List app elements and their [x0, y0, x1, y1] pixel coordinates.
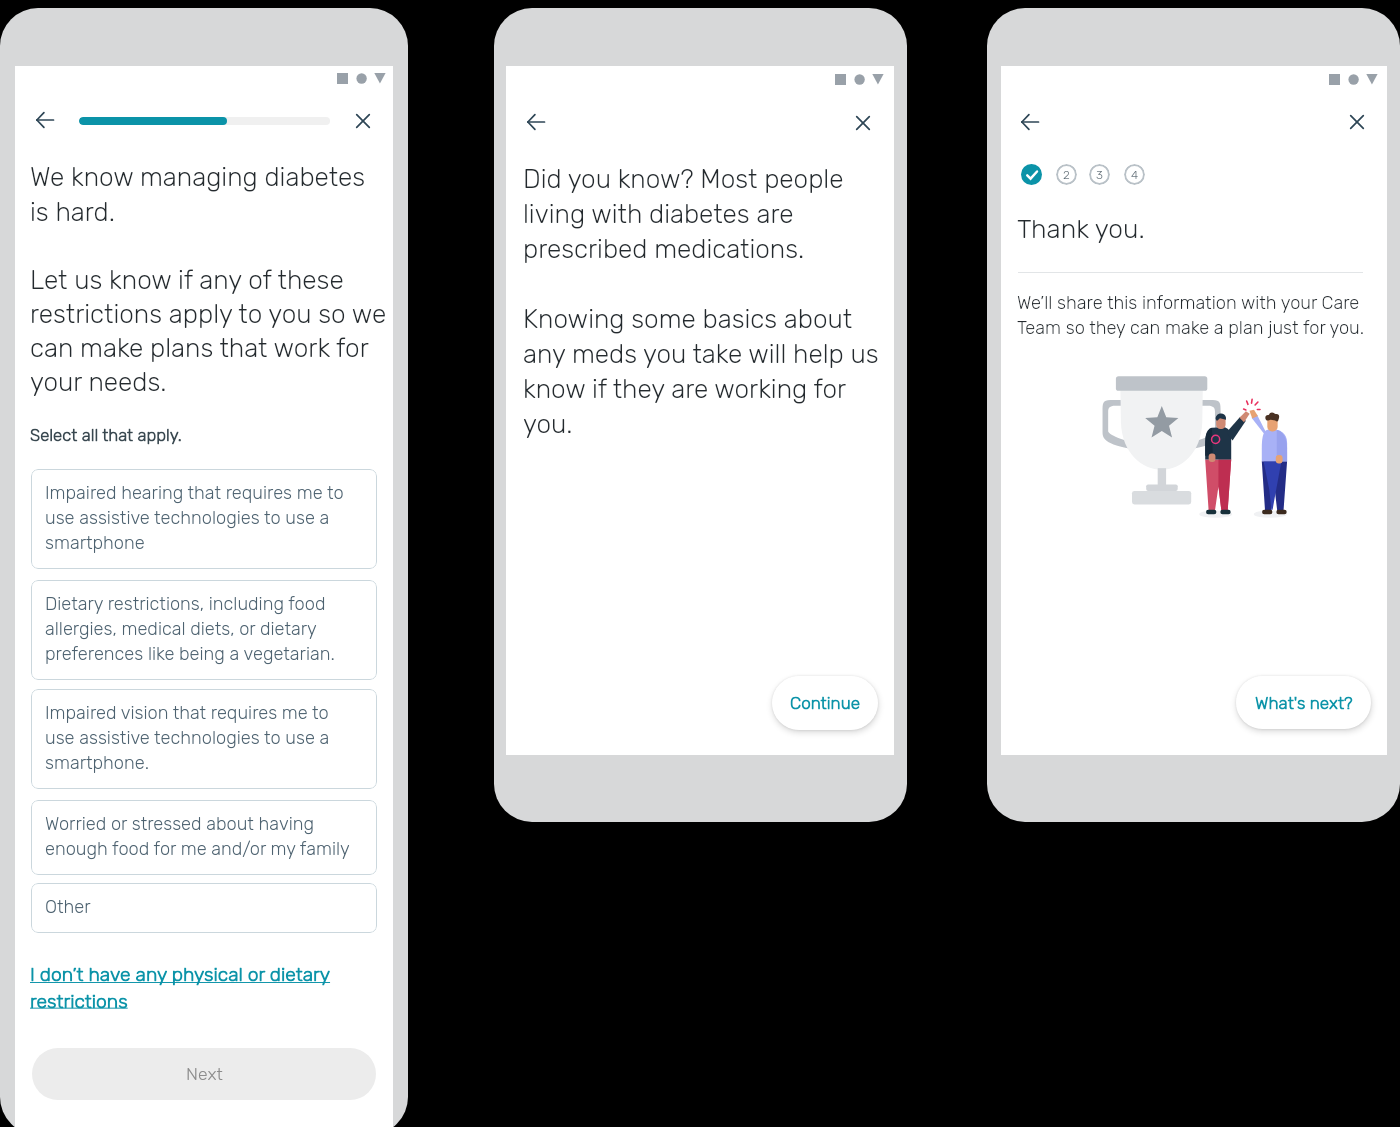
staticText: 4: [1131, 168, 1139, 182]
staticText: 3: [1096, 168, 1103, 182]
button[interactable]: Close: [343, 101, 383, 141]
button[interactable]: Close: [843, 103, 883, 143]
button[interactable]: What's next?: [1236, 676, 1371, 729]
button[interactable]: 4: [1124, 164, 1145, 185]
button[interactable]: Continue: [772, 676, 878, 730]
button[interactable]: Back: [1010, 102, 1050, 142]
staticText: We’ll share this information with your C…: [1017, 292, 1365, 338]
staticText: Other: [45, 896, 91, 918]
button[interactable]: Back: [516, 102, 556, 142]
staticText: Next: [186, 1064, 223, 1085]
staticText: 2: [1063, 168, 1070, 182]
button[interactable]: Impaired vision that requires me to use …: [31, 689, 377, 789]
staticText: Impaired hearing that requires me to use…: [45, 482, 344, 554]
staticText: Thank you.: [1017, 213, 1145, 244]
staticText: Select all that apply.: [30, 425, 182, 445]
staticText: Continue: [790, 693, 860, 713]
button[interactable]: Step 1 complete: [1021, 164, 1042, 185]
button[interactable]: Other: [31, 883, 377, 933]
button[interactable]: Next: [32, 1048, 376, 1100]
staticText: Worried or stressed about having enough …: [45, 813, 350, 860]
staticText: Dietary restrictions, including food all…: [45, 593, 335, 665]
button[interactable]: 2: [1056, 164, 1077, 185]
button[interactable]: Back: [25, 100, 65, 140]
staticText: Did you know? Most people living with di…: [523, 164, 879, 440]
staticText: Impaired vision that requires me to use …: [45, 702, 330, 774]
button[interactable]: I don’t have any physical or dietary res…: [30, 963, 334, 1012]
button[interactable]: 3: [1089, 164, 1110, 185]
button[interactable]: Close: [1337, 102, 1377, 142]
staticText: We know managing diabetes is hard. Let u…: [30, 162, 387, 398]
button[interactable]: Worried or stressed about having enough …: [31, 800, 377, 875]
button[interactable]: Dietary restrictions, including food all…: [31, 580, 377, 680]
staticText: What's next?: [1255, 693, 1353, 713]
staticText: I don’t have any physical or dietary res…: [30, 963, 331, 1012]
button[interactable]: Impaired hearing that requires me to use…: [31, 469, 377, 569]
